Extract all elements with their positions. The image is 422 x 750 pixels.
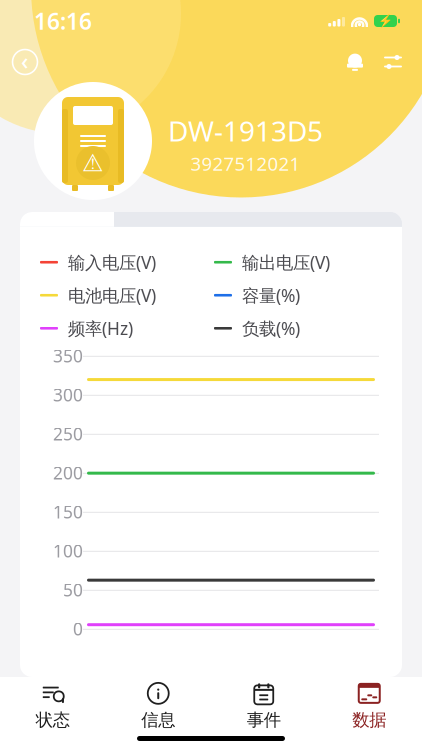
button[interactable]: 状态 — [0, 678, 105, 734]
staticText: 2024-08-12 15:43:36 — [126, 682, 274, 704]
button[interactable]: 信息 — [105, 678, 211, 734]
staticText: 3927512021 — [190, 151, 300, 176]
staticText: 250 — [53, 422, 83, 445]
staticText: 输出电压(V) — [242, 251, 330, 274]
staticText: 50 — [63, 578, 83, 601]
button[interactable]: Settings — [374, 43, 412, 81]
staticText: 0 — [73, 617, 83, 640]
button[interactable]: 24H — [210, 175, 306, 227]
staticText: 电池电压(V) — [68, 284, 156, 307]
staticText: DW-1913D5 — [168, 112, 323, 149]
staticText: ⚠ — [82, 149, 104, 177]
staticText: ⚡ — [378, 14, 393, 28]
staticText: 信息 — [141, 709, 175, 731]
staticText: 容量(%) — [242, 284, 300, 307]
staticText: 300 — [53, 383, 83, 406]
button[interactable]: 事件 — [211, 678, 316, 734]
button[interactable]: 7D — [306, 175, 402, 227]
staticText: 状态 — [36, 709, 70, 731]
staticText: 150 — [53, 500, 83, 523]
staticText: 200 — [53, 461, 83, 484]
staticText: 数据 — [352, 709, 386, 731]
staticText: 24H — [239, 187, 276, 214]
button[interactable]: Back — [6, 43, 44, 81]
button[interactable]: Notifications — [336, 43, 374, 81]
staticText: 6H — [149, 187, 175, 214]
button[interactable]: 数据 — [316, 678, 422, 734]
staticText: 2024-08-12 16 — [282, 682, 386, 704]
staticText: ‹ — [21, 46, 28, 76]
staticText: 2024-08-12 15:16:32 — [36, 672, 118, 714]
button[interactable]: 1H — [20, 175, 114, 227]
button[interactable]: 6H — [114, 175, 210, 227]
staticText: 负载(%) — [242, 317, 300, 340]
staticText: 频率(Hz) — [68, 317, 133, 340]
staticText: 16:16 — [34, 6, 92, 36]
staticText: 100 — [53, 539, 83, 562]
staticText: 1H — [54, 187, 80, 214]
staticText: 事件 — [247, 709, 281, 731]
staticText: 350 — [53, 344, 83, 367]
staticText: 7D — [341, 187, 367, 214]
staticText: 输入电压(V) — [68, 251, 156, 274]
